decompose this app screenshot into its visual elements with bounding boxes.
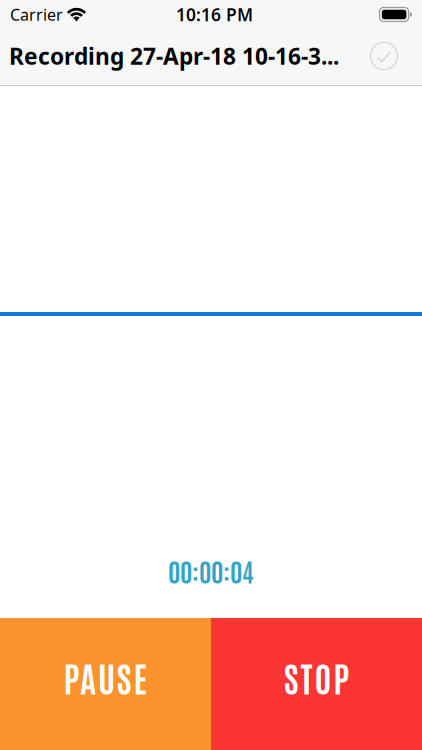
staticText: STOP (284, 655, 349, 699)
staticText: PAUSE (63, 655, 148, 699)
staticText: Carrier (10, 4, 63, 25)
staticText: 00:00:04 (168, 554, 254, 587)
staticText: Recording 27-Apr-18 10-16-3... (9, 41, 339, 71)
staticText: 10:16 PM (176, 3, 253, 26)
button[interactable]: PAUSE (0, 618, 211, 750)
button[interactable]: STOP (211, 618, 422, 750)
button[interactable]: Done (362, 34, 406, 78)
